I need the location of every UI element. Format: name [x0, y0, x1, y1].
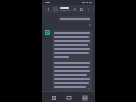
button[interactable]: More options: [85, 6, 92, 13]
button[interactable]: Share: [71, 6, 78, 13]
other: Assistant: [45, 30, 50, 35]
button[interactable]: [58, 16, 92, 22]
button[interactable]: Chats: [64, 93, 73, 102]
button[interactable]: Library: [80, 93, 89, 102]
button[interactable]: Copy: [88, 23, 92, 27]
button[interactable]: Bookmark: [78, 6, 85, 13]
button[interactable]: [53, 5, 71, 13]
button[interactable]: Back: [45, 6, 51, 12]
button[interactable]: Home: [49, 93, 58, 102]
button[interactable]: Copy answer: [52, 30, 92, 91]
